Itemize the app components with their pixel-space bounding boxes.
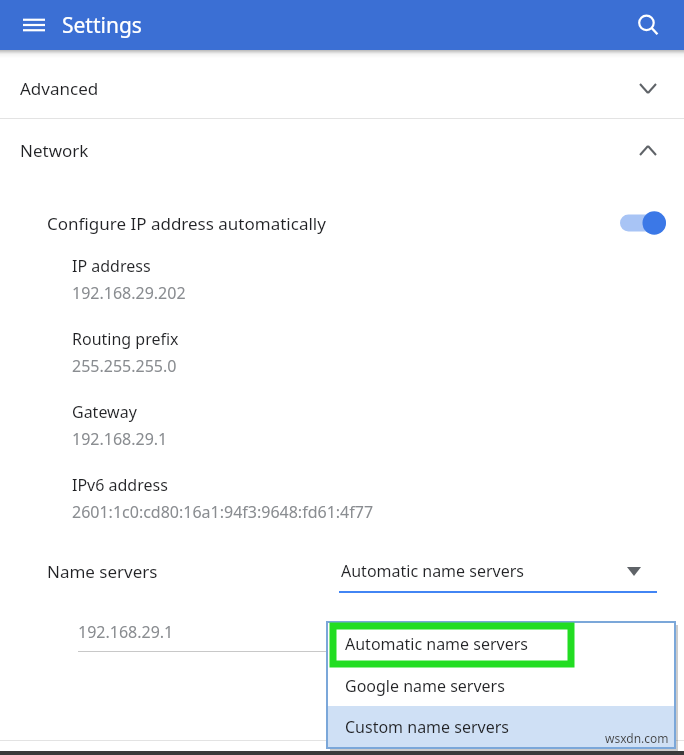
staticText: Advanced [20,77,99,100]
button[interactable]: Advanced [0,58,684,118]
staticText: 255.255.255.0 [72,355,177,377]
button[interactable]: Search [628,5,668,45]
button[interactable]: Automatic name servers [341,560,651,582]
staticText: IPv6 address [72,474,168,496]
staticText: 192.168.29.202 [72,282,186,304]
button[interactable]: Configure IP address automatically [0,199,684,247]
staticText: Network [20,139,89,162]
button[interactable]: Open navigation menu [14,5,54,45]
staticText: wsxdn.com [605,730,669,746]
staticText: 192.168.29.1 [78,621,174,643]
staticText: Gateway [72,401,137,423]
staticText: Routing prefix [72,328,179,350]
staticText: Configure IP address automatically [47,212,326,235]
staticText: Custom name servers [345,716,509,738]
staticText: Automatic name servers [345,633,528,655]
button[interactable]: Network [0,119,684,181]
staticText: Automatic name servers [341,560,627,582]
button[interactable]: Configure IP address automatically toggl… [620,209,666,237]
staticText: Name servers [47,560,158,583]
staticText: Settings [62,11,142,40]
staticText: Google name servers [345,675,505,697]
button[interactable]: Automatic name servers [327,622,675,666]
staticText: IP address [72,255,151,277]
button[interactable]: Custom name servers [327,706,675,748]
staticText: 2601:1c0:cd80:16a1:94f3:9648:fd61:4f77 [72,501,374,523]
staticText: 192.168.29.1 [72,428,168,450]
button[interactable]: Google name servers [327,666,675,706]
